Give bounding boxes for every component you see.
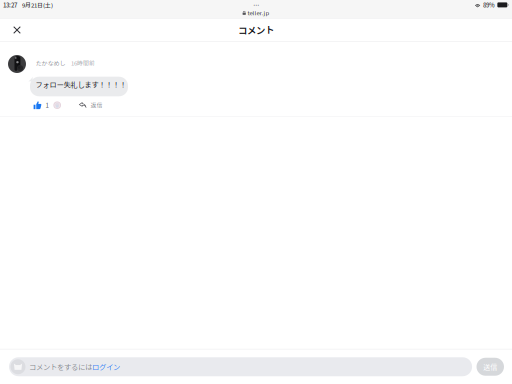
staticText: コメントをするには	[29, 361, 92, 372]
staticText: フォロー失礼します！！！！	[36, 79, 127, 89]
button[interactable]: 閉じる	[4, 18, 30, 42]
button[interactable]: 返信	[77, 99, 105, 112]
staticText: コメント	[238, 23, 274, 37]
button[interactable]: 送信	[476, 358, 504, 376]
staticText: • • •	[253, 2, 258, 8]
staticText: 9月21日(土)	[22, 1, 53, 9]
staticText: teller.jp	[247, 8, 269, 17]
staticText: 16時間前	[71, 59, 95, 67]
button[interactable]: 1	[32, 99, 50, 112]
staticText: 1	[45, 101, 48, 110]
staticText: 返信	[91, 101, 103, 109]
staticText: ログイン	[92, 361, 120, 372]
staticText: 89%	[483, 1, 495, 9]
staticText: たかなめし	[35, 59, 65, 67]
staticText: 送信	[483, 362, 497, 372]
staticText: 13:27	[3, 0, 17, 9]
button[interactable]: コメントをするには	[9, 357, 472, 376]
button[interactable]: リアクションを追加	[50, 99, 64, 112]
